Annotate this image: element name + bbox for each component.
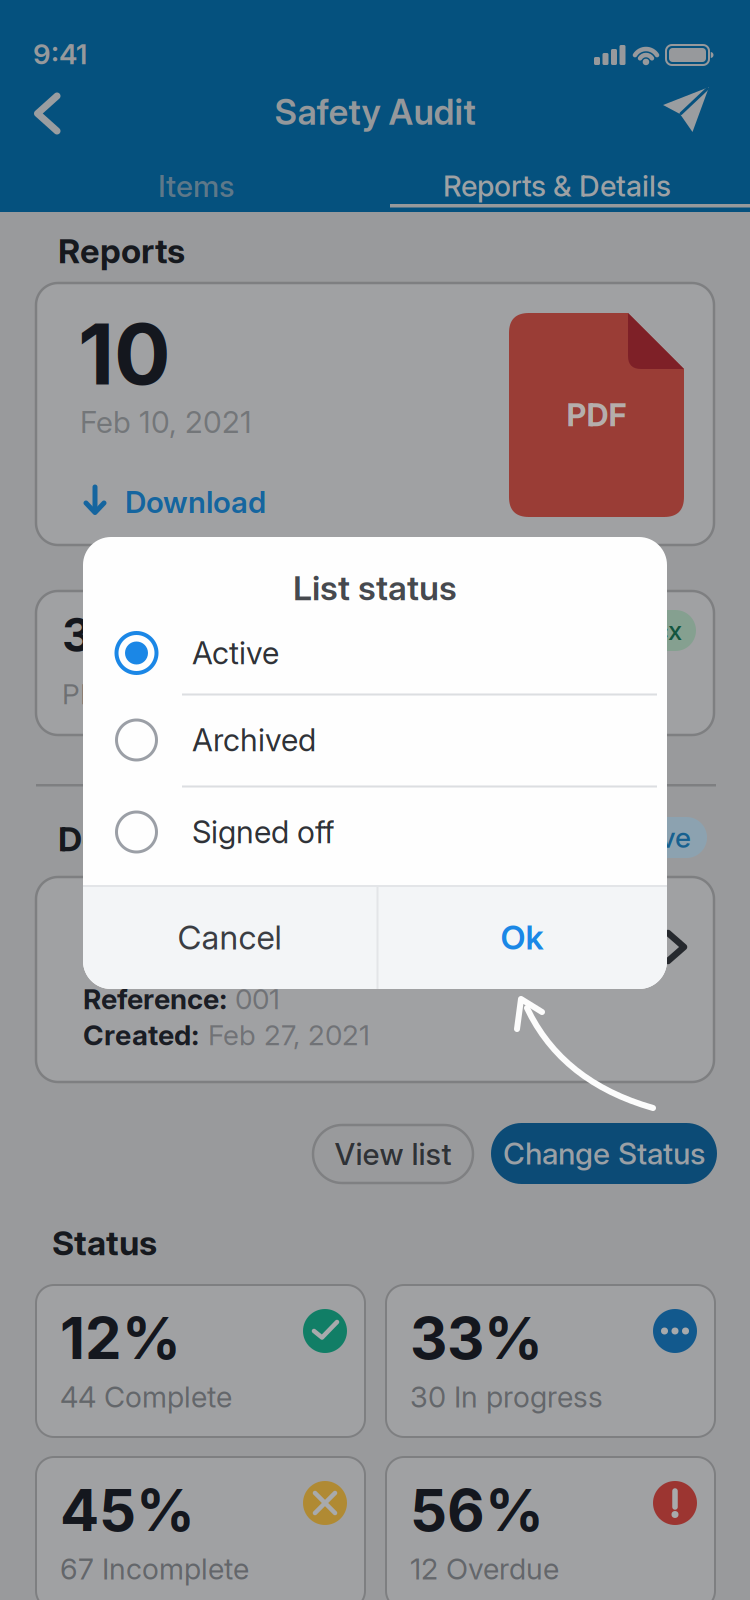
staticText: 56% [410, 1475, 544, 1545]
staticText: Feb 10, 2021 [80, 404, 252, 440]
button[interactable]: Download [78, 480, 348, 524]
staticText: Reports [58, 230, 185, 271]
staticText: Active [192, 634, 279, 672]
staticText: 001 [235, 982, 280, 1016]
staticText: Reference: [83, 982, 227, 1016]
staticText: 33% [410, 1303, 543, 1373]
staticText: 67 Incomplete [60, 1551, 249, 1587]
staticText: 10 [78, 303, 171, 405]
button[interactable]: Change Status [491, 1123, 717, 1184]
staticText: 12 Overdue [410, 1551, 559, 1587]
button[interactable]: Back [27, 86, 71, 142]
staticText: Details [58, 818, 170, 859]
staticText: List status [293, 567, 457, 608]
staticText: Feb 27, 2021 [208, 1018, 370, 1052]
staticText: PDF Report [62, 677, 209, 711]
button[interactable]: Active [83, 537, 667, 625]
staticText: Docx [620, 615, 682, 646]
staticText: Change Status [503, 1135, 705, 1172]
staticText: Items [158, 168, 234, 204]
staticText: Signed off [192, 813, 334, 851]
staticText: Cancel [177, 917, 281, 957]
button[interactable]: Archived [83, 537, 667, 625]
button[interactable]: Cancel [83, 886, 376, 989]
staticText: Download [125, 484, 266, 520]
button[interactable]: Ok [377, 886, 667, 989]
staticText: PDF [566, 396, 626, 434]
staticText: Safety Audit [274, 91, 475, 133]
button[interactable]: View list [313, 1125, 473, 1183]
staticText: Archived [192, 721, 316, 759]
button[interactable]: Reports & Details [387, 166, 727, 206]
staticText: Active [609, 821, 691, 854]
staticText: 9:41 [33, 37, 87, 71]
button[interactable]: Items [46, 166, 346, 206]
staticText: Status [52, 1222, 157, 1263]
staticText: Ok [500, 917, 543, 957]
staticText: Created: [83, 1018, 199, 1052]
staticText: View list [334, 1136, 451, 1172]
button[interactable]: Signed off [83, 537, 667, 625]
staticText: 44 Complete [60, 1379, 232, 1415]
staticText: 30 In progress [410, 1379, 603, 1415]
staticText: 12% [60, 1303, 181, 1373]
staticText: 45% [60, 1475, 195, 1545]
staticText: 35 [62, 607, 121, 663]
staticText: Reports & Details [443, 168, 671, 204]
button[interactable]: Share [655, 78, 719, 140]
button[interactable]: Reference: [36, 877, 714, 1082]
